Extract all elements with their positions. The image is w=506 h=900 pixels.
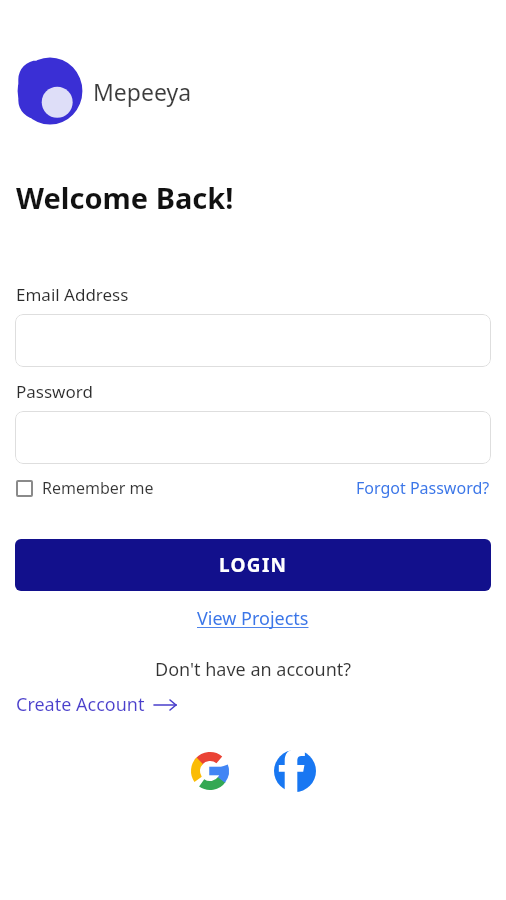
button[interactable]: LOGIN <box>15 539 491 591</box>
button[interactable]: Create Account <box>16 692 176 717</box>
button[interactable]: Remember me <box>16 477 154 499</box>
button[interactable] <box>15 314 491 367</box>
button[interactable]: Mepeeya <box>14 52 192 130</box>
staticText: Don't have an account? <box>155 657 352 682</box>
button[interactable]: Sign in with Facebook <box>273 749 317 793</box>
staticText: Mepeeya <box>93 76 192 107</box>
button[interactable]: Forgot Password? <box>356 477 490 499</box>
button[interactable] <box>15 411 491 464</box>
staticText: LOGIN <box>219 552 288 578</box>
staticText: Password <box>16 380 93 403</box>
button[interactable]: View Projects <box>197 606 309 631</box>
staticText: Remember me <box>42 477 154 499</box>
staticText: Create Account <box>16 692 145 717</box>
staticText: Email Address <box>16 283 129 306</box>
staticText: Welcome Back! <box>16 178 234 217</box>
button[interactable]: Sign in with Google <box>189 750 231 792</box>
